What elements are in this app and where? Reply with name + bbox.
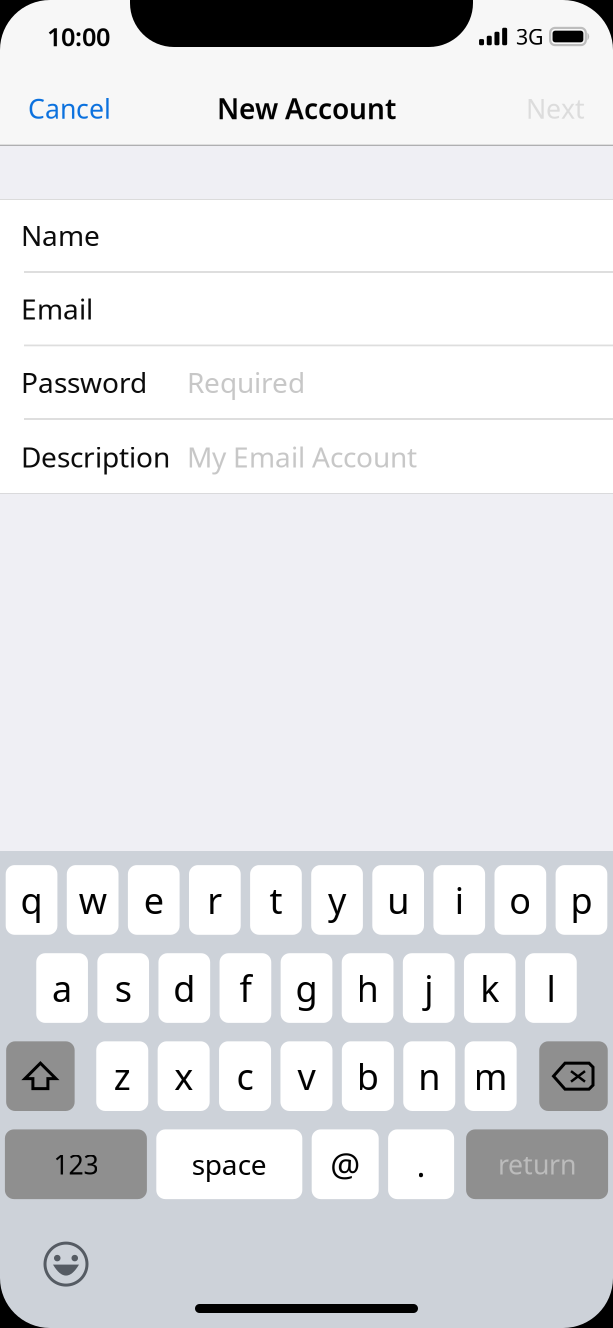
button[interactable]: e [128, 865, 180, 935]
staticText: Next [526, 91, 585, 126]
staticText: r [207, 876, 222, 924]
button[interactable]: z [96, 1041, 148, 1111]
staticText: w [79, 876, 107, 924]
staticText: v [297, 1052, 315, 1100]
staticText: e [144, 876, 164, 924]
button[interactable]: l [525, 953, 577, 1023]
staticText: o [509, 876, 531, 924]
staticText: a [52, 964, 72, 1012]
button[interactable]: o [494, 865, 546, 935]
button[interactable]: m [465, 1041, 517, 1111]
staticText: t [269, 876, 282, 924]
button[interactable]: . [388, 1129, 454, 1199]
staticText: d [173, 964, 195, 1012]
button[interactable]: Cancel [0, 73, 139, 144]
button[interactable]: j [403, 953, 455, 1023]
button[interactable]: s [97, 953, 149, 1023]
button[interactable]: n [403, 1041, 455, 1111]
button[interactable]: Description [0, 420, 613, 493]
staticText: k [480, 964, 499, 1012]
staticText: Password [21, 364, 147, 401]
button[interactable]: b [342, 1041, 394, 1111]
staticText: p [570, 876, 592, 924]
staticText: Name [21, 217, 100, 254]
staticText: c [237, 1052, 254, 1100]
button[interactable]: Emoji [43, 1241, 89, 1287]
button[interactable]: u [372, 865, 424, 935]
button[interactable]: r [189, 865, 241, 935]
staticText: Email [21, 290, 93, 327]
button[interactable]: i [433, 865, 485, 935]
staticText: i [455, 876, 464, 924]
staticText: . [417, 1142, 426, 1186]
staticText: My Email Account [187, 438, 417, 475]
staticText: l [546, 964, 555, 1012]
staticText: return [498, 1146, 576, 1182]
button[interactable]: return [466, 1129, 608, 1199]
staticText: n [418, 1052, 440, 1100]
staticText: u [387, 876, 409, 924]
button[interactable]: c [219, 1041, 271, 1111]
button[interactable]: f [220, 953, 271, 1023]
button[interactable]: space [156, 1129, 302, 1199]
button[interactable]: Next [498, 73, 613, 144]
button[interactable]: Delete [539, 1041, 608, 1111]
button[interactable]: w [67, 865, 118, 935]
button[interactable]: g [281, 953, 332, 1023]
button[interactable]: Password [0, 346, 613, 420]
staticText: y [328, 876, 346, 924]
button[interactable]: t [250, 865, 302, 935]
staticText: 123 [53, 1146, 98, 1182]
button[interactable]: a [36, 953, 88, 1023]
button[interactable]: Shift [6, 1041, 75, 1111]
staticText: Cancel [28, 91, 111, 126]
staticText: x [174, 1052, 193, 1100]
staticText: q [20, 876, 42, 924]
staticText: m [474, 1052, 508, 1100]
button[interactable]: x [158, 1041, 210, 1111]
staticText: @ [330, 1142, 360, 1186]
button[interactable]: Name [0, 199, 613, 273]
button[interactable]: y [311, 865, 363, 935]
staticText: 10:00 [47, 20, 110, 53]
staticText: New Account [217, 90, 396, 127]
staticText: j [424, 964, 433, 1012]
button[interactable]: v [280, 1041, 332, 1111]
button[interactable]: q [6, 865, 57, 935]
button[interactable]: Email [0, 273, 613, 346]
button[interactable]: h [342, 953, 393, 1023]
staticText: g [295, 964, 317, 1012]
staticText: f [239, 964, 251, 1012]
staticText: Required [187, 364, 305, 401]
staticText: 3G [516, 22, 544, 51]
staticText: b [357, 1052, 379, 1100]
button[interactable]: k [464, 953, 516, 1023]
button[interactable]: @ [312, 1129, 379, 1199]
staticText: h [357, 964, 379, 1012]
button[interactable]: 123 [5, 1129, 147, 1199]
staticText: s [115, 964, 132, 1012]
staticText: z [114, 1052, 131, 1100]
button[interactable]: d [158, 953, 210, 1023]
staticText: Description [21, 438, 170, 475]
staticText: space [192, 1146, 267, 1183]
button[interactable]: p [556, 865, 607, 935]
